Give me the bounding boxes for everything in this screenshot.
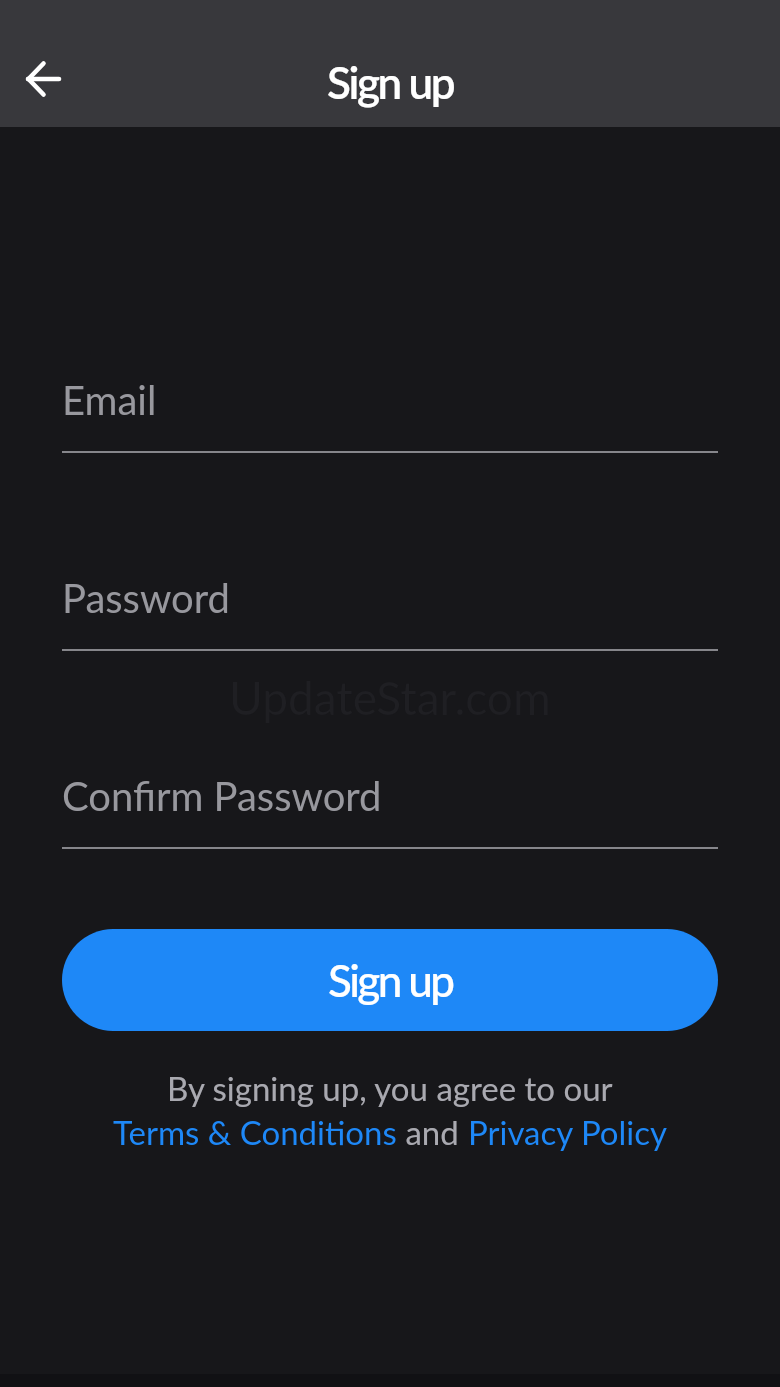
button[interactable]: Sign up xyxy=(62,929,718,1031)
staticText: Confirm Password xyxy=(62,772,382,820)
button[interactable]: Email xyxy=(62,376,718,453)
staticText: Sign up xyxy=(327,56,454,109)
staticText: and xyxy=(397,1112,468,1152)
staticText: Password xyxy=(62,574,230,622)
button[interactable]: Password xyxy=(62,574,718,651)
button[interactable]: Privacy Policy xyxy=(468,1112,668,1152)
staticText: UpdateStar.com xyxy=(229,670,551,725)
button[interactable]: Terms & Conditions xyxy=(113,1112,397,1152)
staticText: By signing up, you agree to our xyxy=(167,1068,613,1108)
staticText: Sign up xyxy=(328,954,453,1007)
staticText: Email xyxy=(62,376,157,424)
button[interactable]: Confirm Password xyxy=(62,772,718,849)
button[interactable] xyxy=(15,49,71,105)
